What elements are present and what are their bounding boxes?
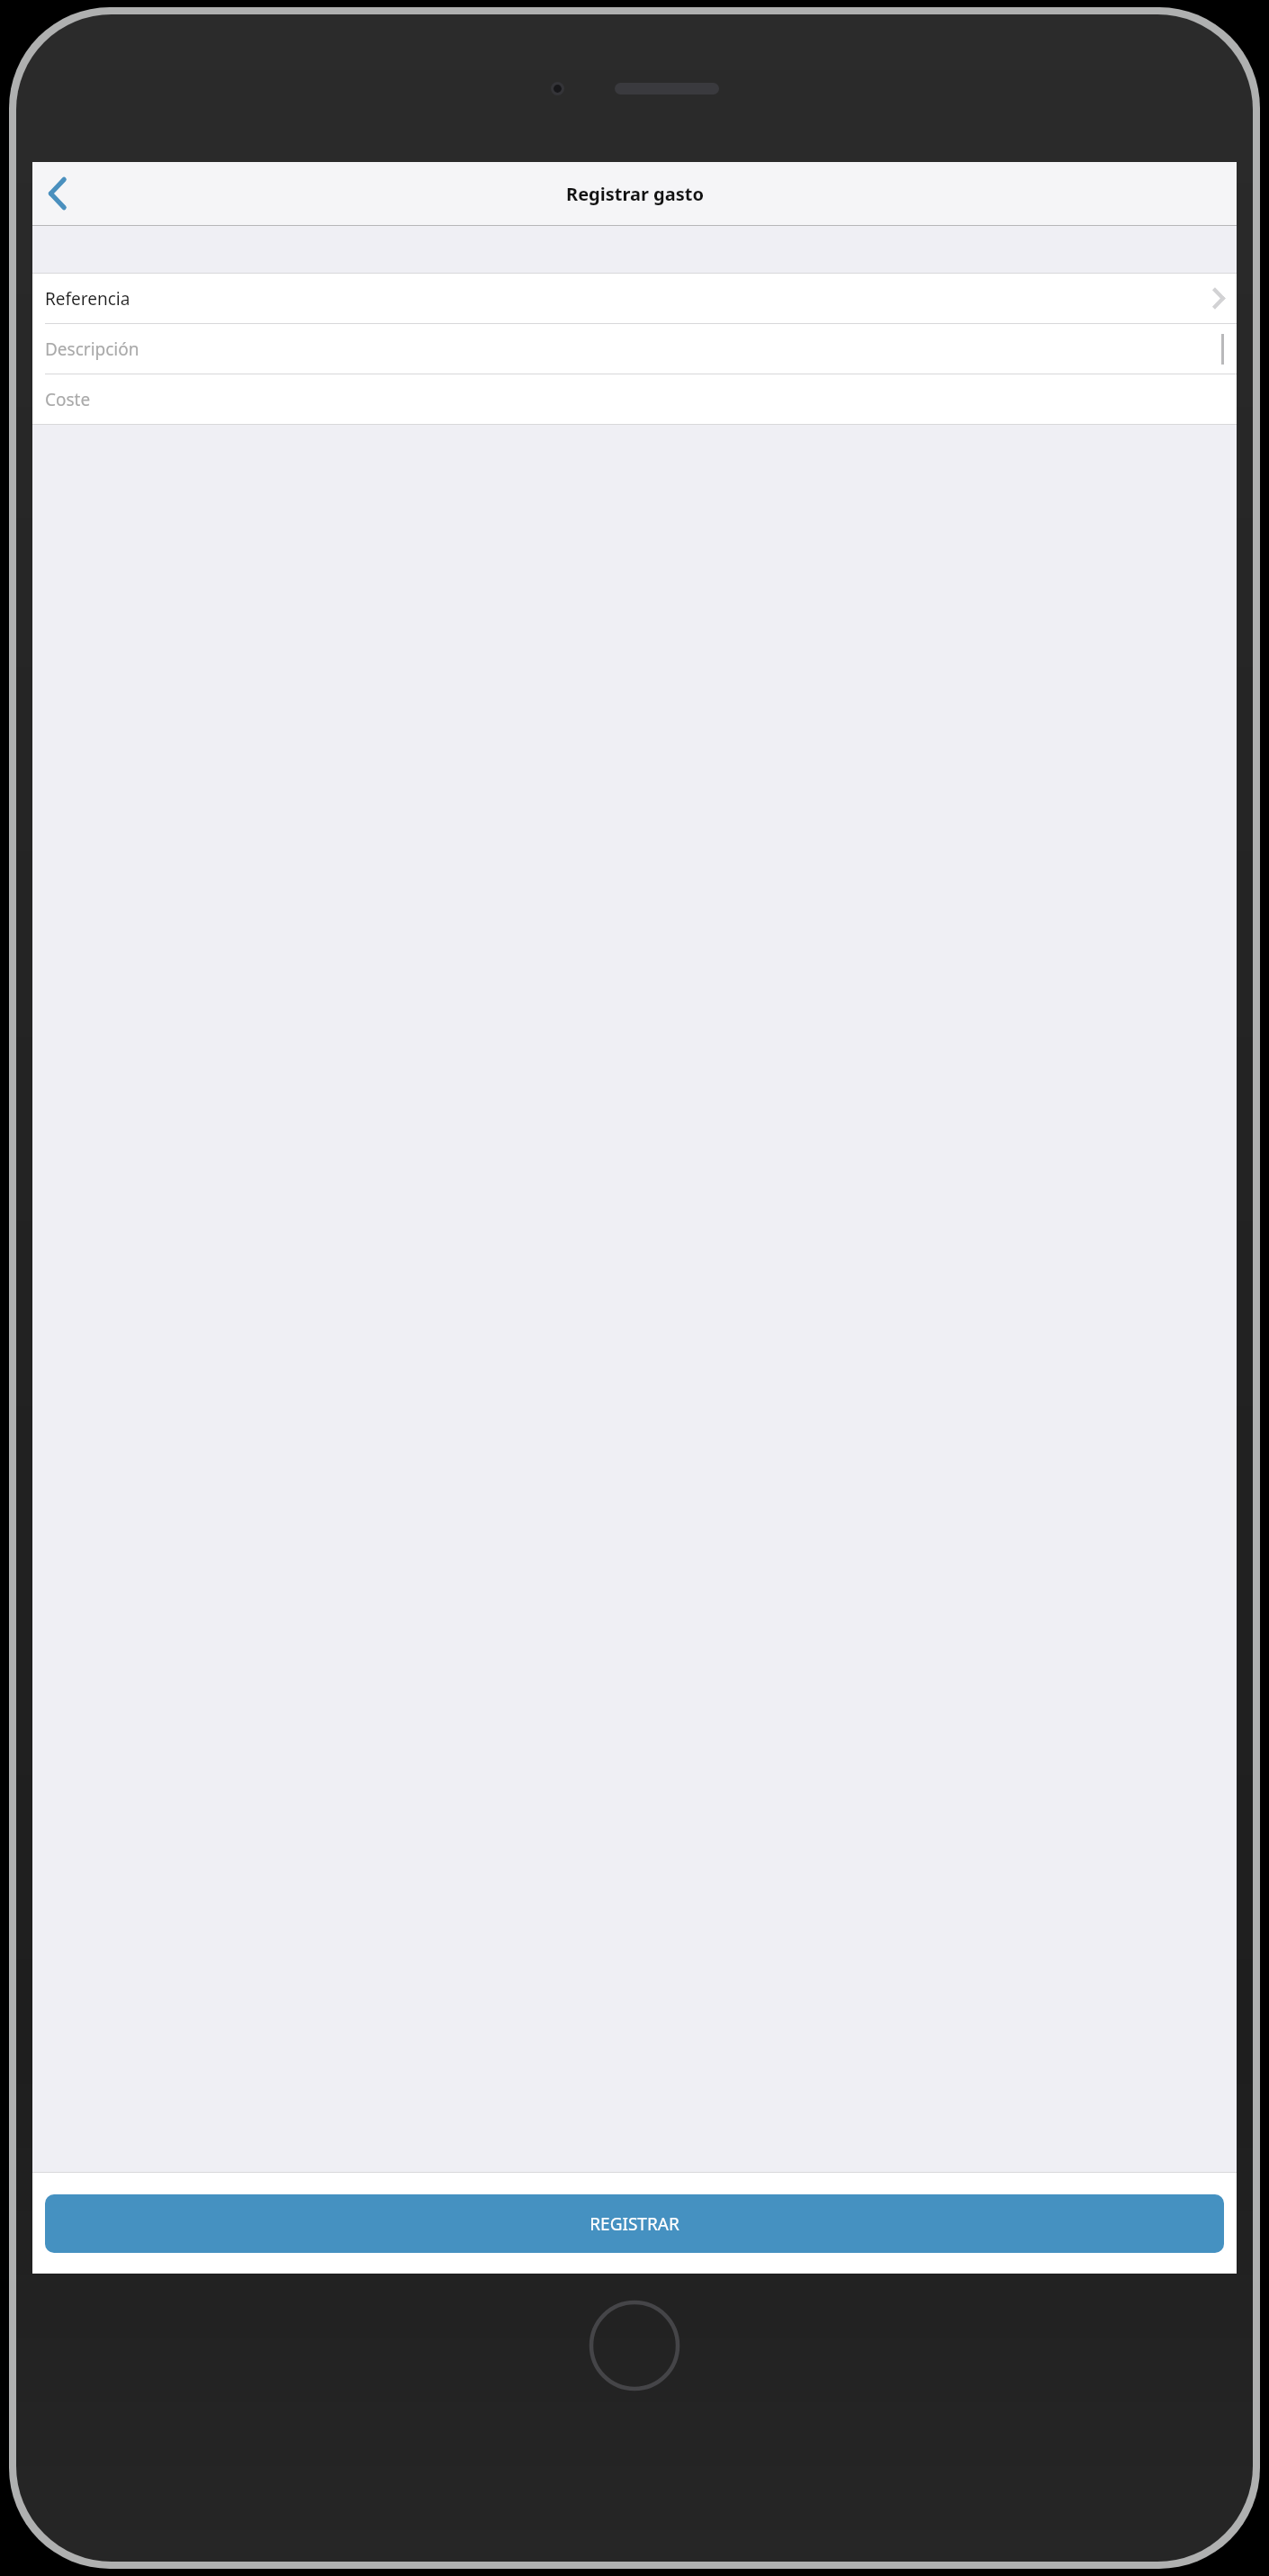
staticText: Registrar gasto (566, 182, 704, 206)
button[interactable]: Descripción (32, 324, 1237, 374)
button[interactable]: Coste (32, 374, 1237, 424)
staticText: Coste (45, 388, 91, 411)
button[interactable]: REGISTRAR (45, 2194, 1224, 2253)
staticText: Descripción (45, 338, 139, 361)
button[interactable]: Back (32, 162, 83, 225)
staticText: REGISTRAR (589, 2212, 679, 2236)
staticText: Referencia (45, 287, 130, 311)
button[interactable]: Referencia (32, 274, 1237, 323)
